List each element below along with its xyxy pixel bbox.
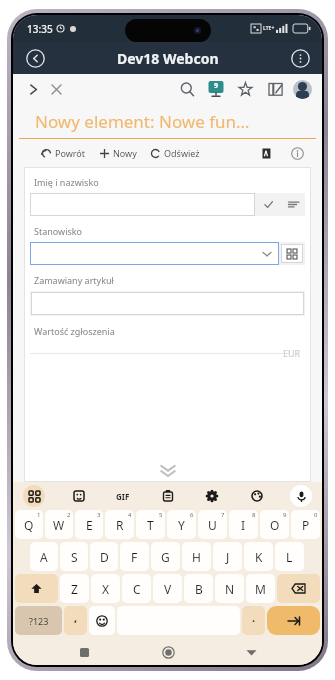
staticText: I bbox=[241, 517, 246, 533]
button[interactable]: Powrót bbox=[39, 147, 88, 159]
staticText: Stanowisko bbox=[34, 225, 83, 237]
staticText: Nowy bbox=[113, 147, 137, 159]
button[interactable]: More options bbox=[289, 47, 311, 69]
button[interactable]: Stickers bbox=[68, 485, 90, 507]
button[interactable]: W bbox=[45, 510, 73, 539]
button[interactable]: L bbox=[275, 542, 304, 571]
staticText: 6 bbox=[190, 511, 194, 519]
button[interactable]: I bbox=[229, 510, 258, 539]
button[interactable]: T bbox=[136, 510, 165, 539]
staticText: 1 bbox=[37, 511, 41, 519]
staticText: Nowy element: Nowe fun… bbox=[35, 110, 250, 133]
staticText: L bbox=[286, 549, 293, 565]
button[interactable]: Bookmark bbox=[233, 77, 257, 101]
button[interactable]: E bbox=[75, 510, 103, 539]
button[interactable]: Forward bbox=[23, 79, 43, 99]
button[interactable]: Back bbox=[238, 639, 264, 665]
button[interactable]: Clipboard bbox=[157, 485, 179, 507]
staticText: Y bbox=[178, 517, 185, 533]
button[interactable]: N bbox=[215, 574, 244, 603]
staticText: A bbox=[40, 549, 48, 565]
staticText: 4 bbox=[128, 511, 132, 519]
button[interactable]: Settings bbox=[201, 485, 223, 507]
staticText: . bbox=[252, 610, 256, 625]
staticText: Dev18 Webcon bbox=[117, 49, 219, 68]
button[interactable]: X bbox=[91, 574, 120, 603]
button[interactable]: F bbox=[120, 542, 149, 571]
button[interactable]: P bbox=[291, 510, 320, 539]
staticText: 9 bbox=[283, 511, 287, 519]
button[interactable] bbox=[31, 292, 304, 315]
staticText: J bbox=[226, 549, 230, 565]
button[interactable]: V bbox=[153, 574, 182, 603]
button[interactable]: Home bbox=[155, 639, 181, 665]
button[interactable]: Backspace bbox=[277, 574, 320, 603]
staticText: D bbox=[100, 549, 109, 565]
button[interactable]: B bbox=[184, 574, 213, 603]
button[interactable]: A bbox=[30, 542, 58, 571]
staticText: P bbox=[302, 517, 310, 533]
staticText: Zamawiany artykuł bbox=[34, 274, 114, 286]
staticText: F bbox=[131, 549, 138, 565]
button[interactable]: J bbox=[213, 542, 242, 571]
button[interactable]: Shift bbox=[15, 574, 58, 603]
button[interactable]: Close bbox=[46, 79, 66, 99]
button[interactable]: O bbox=[260, 510, 289, 539]
button[interactable]: Voice input bbox=[290, 485, 312, 507]
button[interactable]: D bbox=[90, 542, 118, 571]
button[interactable]: S bbox=[60, 542, 88, 571]
button[interactable]: Z bbox=[60, 574, 89, 603]
staticText: 13:35 bbox=[27, 22, 53, 36]
button[interactable]: K bbox=[244, 542, 273, 571]
staticText: 5 bbox=[159, 511, 163, 519]
staticText: 9 bbox=[214, 81, 219, 91]
button[interactable]: Search bbox=[175, 77, 199, 101]
staticText: GIF bbox=[116, 491, 130, 502]
staticText: C bbox=[133, 581, 141, 597]
staticText: Odśwież bbox=[164, 147, 200, 159]
button[interactable]: Tabs: 9 bbox=[205, 78, 227, 100]
button[interactable]: U bbox=[198, 510, 227, 539]
button[interactable]: Notes bbox=[263, 77, 287, 101]
staticText: 7 bbox=[221, 511, 225, 519]
staticText: G bbox=[161, 549, 170, 565]
button[interactable]: Information bbox=[288, 144, 306, 162]
button[interactable]: ?123 bbox=[15, 606, 62, 635]
staticText: EUR bbox=[283, 347, 301, 359]
button[interactable]: C bbox=[122, 574, 151, 603]
staticText: H bbox=[192, 549, 201, 565]
button[interactable]: Toolbox bbox=[23, 485, 45, 507]
button[interactable]: Account bbox=[293, 80, 312, 99]
button[interactable]: G bbox=[151, 542, 180, 571]
button[interactable]: Attachment bbox=[258, 144, 276, 162]
staticText: Powrót bbox=[55, 147, 86, 159]
button[interactable]: Scan code bbox=[30, 242, 305, 265]
button[interactable] bbox=[30, 193, 305, 216]
button[interactable]: GIF bbox=[112, 485, 134, 507]
button[interactable]: Q bbox=[15, 510, 43, 539]
staticText: 8 bbox=[252, 511, 256, 519]
staticText: 0 bbox=[314, 511, 318, 519]
staticText: N bbox=[225, 581, 235, 597]
button[interactable]: Themes bbox=[246, 485, 268, 507]
button[interactable]: Odśwież bbox=[148, 147, 202, 159]
button[interactable]: Emoji bbox=[89, 606, 115, 635]
button[interactable]: . bbox=[242, 606, 265, 635]
staticText: R bbox=[116, 517, 124, 533]
button[interactable]: Nowy bbox=[97, 147, 139, 159]
button[interactable]: Y bbox=[167, 510, 196, 539]
button[interactable]: Back bbox=[24, 47, 46, 69]
button[interactable]: Recent apps bbox=[71, 639, 97, 665]
button[interactable]: Scan code bbox=[281, 244, 303, 263]
button[interactable]: R bbox=[105, 510, 134, 539]
button[interactable]: Enter bbox=[267, 606, 320, 635]
button[interactable]: , bbox=[64, 606, 87, 635]
button[interactable]: H bbox=[182, 542, 211, 571]
staticText: Q bbox=[24, 517, 34, 533]
staticText: 3 bbox=[97, 511, 101, 519]
staticText: LTE+ bbox=[263, 25, 275, 32]
button[interactable]: M bbox=[246, 574, 275, 603]
staticText: O bbox=[270, 517, 280, 533]
staticText: Wartość zgłoszenia bbox=[34, 325, 115, 337]
